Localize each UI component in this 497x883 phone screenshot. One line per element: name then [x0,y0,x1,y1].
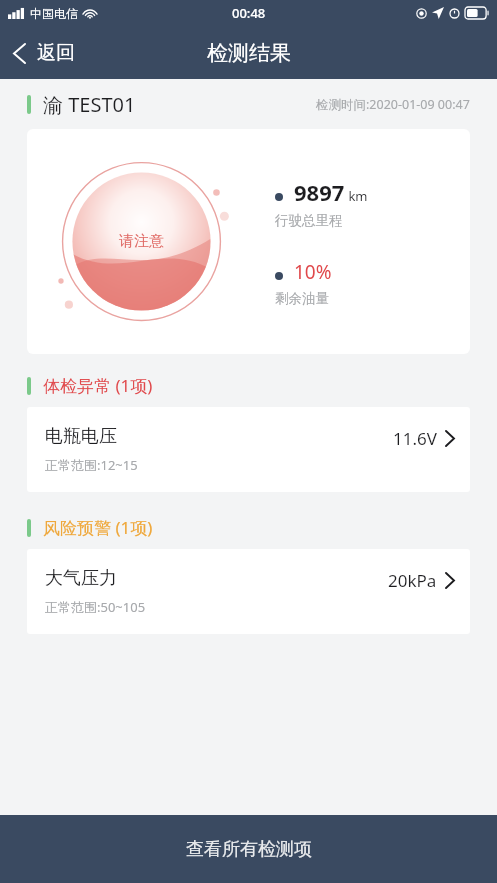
staticText: 大气压力 [45,567,117,590]
staticText: 正常范围:50~105 [45,598,146,616]
staticText: 20kPa [388,569,437,592]
staticText: 返回 [37,41,75,65]
staticText: 渝 TEST01 [43,91,136,118]
staticText: 风险预警 (1项) [43,516,153,539]
staticText: 请注意 [119,232,164,251]
button[interactable]: 返回 [0,33,89,73]
staticText: 剩余油量 [275,290,329,307]
staticText: 10% [294,259,332,285]
staticText: 11.6V [393,427,437,450]
button[interactable]: 查看所有检测项 [0,815,497,883]
staticText: 9897 [294,177,345,207]
staticText: 电瓶电压 [45,425,117,448]
staticText: 中国电信 [30,6,78,21]
button[interactable]: 电瓶电压 [27,407,470,492]
staticText: km [345,187,368,205]
staticText: 检测结果 [207,40,291,66]
staticText: 00:48 [232,4,266,22]
button[interactable]: 大气压力 [27,549,470,634]
staticText: 检测时间:2020-01-09 00:47 [316,96,470,113]
staticText: 体检异常 (1项) [43,374,153,397]
staticText: 行驶总里程 [275,212,343,229]
staticText: 查看所有检测项 [186,838,312,861]
staticText: 正常范围:12~15 [45,456,138,474]
